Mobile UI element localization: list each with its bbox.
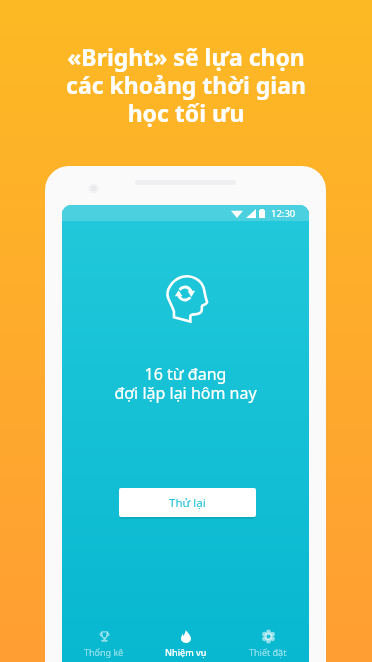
other: Thống kê — [99, 631, 110, 642]
button[interactable]: Thống kê — [62, 626, 145, 661]
staticText: Nhiệm vụ — [165, 646, 207, 658]
staticText: 16 từ đang đợi lặp lại hôm nay — [62, 363, 309, 404]
button[interactable]: Nhiệm vụ — [145, 626, 227, 661]
other: Nhiệm vụ — [181, 630, 191, 643]
staticText: 12:30 — [271, 207, 296, 220]
staticText: Thiết đặt — [249, 646, 287, 658]
staticText: Thử lại — [169, 495, 206, 511]
button[interactable]: Thử lại — [119, 488, 256, 517]
button[interactable]: Thiết đặt — [227, 626, 309, 661]
staticText: «Bright» sẽ lựa chọn các khoảng thời gia… — [0, 41, 372, 129]
other: Thiết đặt — [263, 631, 274, 642]
staticText: Thống kê — [84, 646, 124, 658]
